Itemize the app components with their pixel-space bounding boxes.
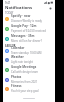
button[interactable]: Messages · 35m xyxy=(3,34,55,43)
button[interactable]: Google Meetings xyxy=(3,65,55,74)
button[interactable]: Calendar xyxy=(3,46,55,55)
staticText: Photos xyxy=(11,75,22,79)
button[interactable]: Spotify · now xyxy=(3,14,55,23)
staticText: Google Pay · 12m xyxy=(11,24,37,28)
staticText: You hit your step goal xyxy=(11,89,39,93)
staticText: 9:41 xyxy=(5,1,11,5)
staticText: TODAY xyxy=(5,11,14,15)
staticText: Mom: still on for dinner? xyxy=(11,39,42,43)
staticText: Call with design team xyxy=(11,70,39,74)
staticText: Memories from 2021 xyxy=(11,80,38,84)
staticText: Notifications xyxy=(5,5,33,11)
staticText: EARLIER xyxy=(5,44,16,48)
button[interactable]: Weather xyxy=(3,55,55,64)
staticText: Team standup 10:00 AM xyxy=(11,51,42,55)
staticText: Light rain tonight xyxy=(11,60,33,64)
staticText: Messages · 35m xyxy=(11,34,35,38)
staticText: Discover Weekly is ready xyxy=(11,19,42,23)
button[interactable]: Fitness xyxy=(3,84,55,93)
staticText: Calendar xyxy=(11,46,25,50)
button[interactable]: Photos xyxy=(3,75,55,84)
staticText: Payment of $24.50 received xyxy=(11,29,46,33)
button[interactable]: Settings xyxy=(48,6,53,11)
staticText: Fitness xyxy=(11,84,22,88)
button[interactable]: Google Pay · 12m xyxy=(3,24,55,33)
staticText: Google Meetings xyxy=(11,65,37,69)
staticText: Spotify · now xyxy=(11,14,31,18)
staticText: Weather xyxy=(11,55,24,59)
